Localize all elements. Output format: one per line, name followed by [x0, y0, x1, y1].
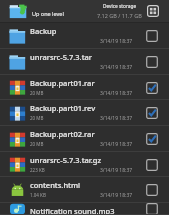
button[interactable]: unrarsrc-5.7.3.tar [0, 49, 169, 75]
staticText: Up one level [32, 10, 64, 17]
staticText: Backup [30, 26, 57, 36]
staticText: 3/14/19 18:37 [100, 167, 133, 174]
staticText: 3/14/19 18:37 [100, 115, 133, 122]
staticText: 20 MB [30, 115, 44, 121]
staticText: 223 KB [30, 167, 45, 173]
button[interactable]: Backup.part01.rev [0, 100, 169, 126]
button[interactable]: contents.html [0, 177, 169, 203]
button[interactable]: Backup.part02.rar [0, 126, 169, 152]
staticText: 7.12 GB / 11.7 GB [97, 12, 142, 19]
staticText: Backup.part01.rev [30, 103, 96, 113]
button[interactable]: Backup [0, 23, 169, 49]
staticText: 3/14/19 18:37 [100, 38, 133, 45]
staticText: 3/14/19 18:37 [100, 141, 133, 148]
button[interactable]: Switch view mode [145, 4, 161, 20]
staticText: 3/14/19 18:37 [100, 64, 133, 71]
staticText: Backup.part01.rar [30, 78, 95, 88]
staticText: 20 MB [30, 141, 44, 147]
staticText: 1.04 KB [30, 192, 46, 198]
staticText: Device storage [103, 3, 137, 10]
staticText: 3/14/19 18:37 [100, 192, 133, 199]
staticText: 3/14/19 18:37 [100, 90, 133, 97]
button[interactable]: unrarsrc-5.7.3.tar.gz [0, 152, 169, 177]
staticText: contents.html [30, 180, 81, 190]
staticText: Backup.part02.rar [30, 129, 95, 139]
staticText: Notification sound.mp3 [30, 206, 115, 215]
staticText: unrarsrc-5.7.3.tar.gz [30, 155, 102, 165]
button[interactable]: Backup.part01.rar [0, 75, 169, 100]
staticText: unrarsrc-5.7.3.tar [30, 52, 92, 62]
button[interactable]: Notification sound.mp3 [0, 203, 169, 215]
staticText: 20 MB [30, 90, 44, 96]
button[interactable]: Up one level [0, 0, 169, 23]
